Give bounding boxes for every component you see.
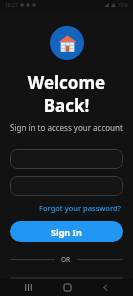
button[interactable]: Forgot your password? xyxy=(37,201,123,215)
button[interactable]: Home xyxy=(56,279,78,296)
staticText: 10:27 xyxy=(5,2,18,9)
staticText: Forgot your password? xyxy=(39,203,121,213)
staticText: Sign in to access your account xyxy=(10,122,123,133)
button[interactable] xyxy=(10,176,123,196)
button[interactable]: Back xyxy=(94,279,116,296)
button[interactable] xyxy=(10,149,123,169)
staticText: Sign In xyxy=(51,226,82,238)
button[interactable]: Sign In xyxy=(10,221,123,242)
button[interactable]: Recents xyxy=(17,279,39,296)
staticText: OR xyxy=(61,255,71,264)
staticText: Welcome Back! xyxy=(10,71,123,117)
staticText: 78% xyxy=(118,2,128,9)
